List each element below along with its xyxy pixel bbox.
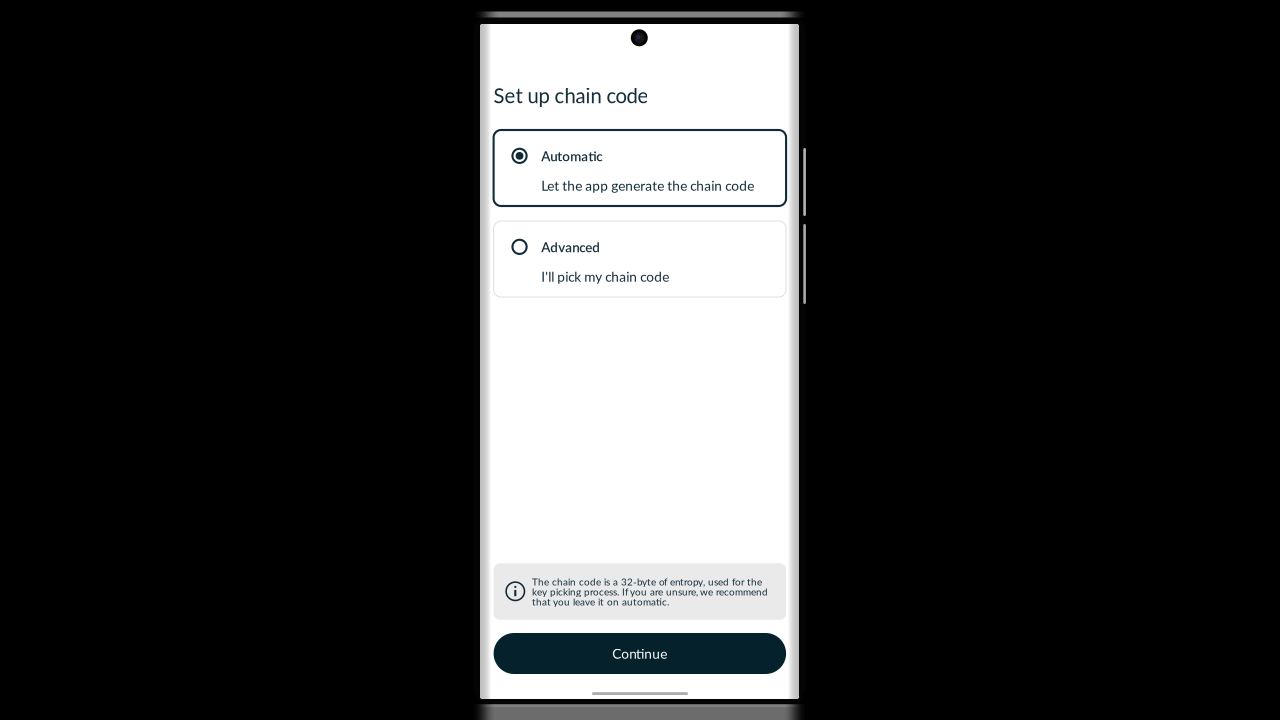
- staticText: that you leave it on automatic.: [532, 596, 669, 607]
- staticText: Continue: [612, 645, 667, 662]
- staticText: I'll pick my chain code: [541, 268, 669, 285]
- staticText: Set up chain code: [493, 83, 648, 108]
- staticText: Advanced: [541, 239, 600, 255]
- staticText: key picking process. If you are unsure, …: [532, 586, 768, 597]
- button[interactable]: Automatic: [494, 130, 786, 206]
- staticText: Automatic: [541, 148, 602, 164]
- staticText: The chain code is a 32-byte of entropy, …: [532, 576, 762, 587]
- button[interactable]: Advanced: [494, 221, 786, 297]
- button[interactable]: Continue: [494, 633, 786, 674]
- staticText: Let the app generate the chain code: [541, 177, 754, 194]
